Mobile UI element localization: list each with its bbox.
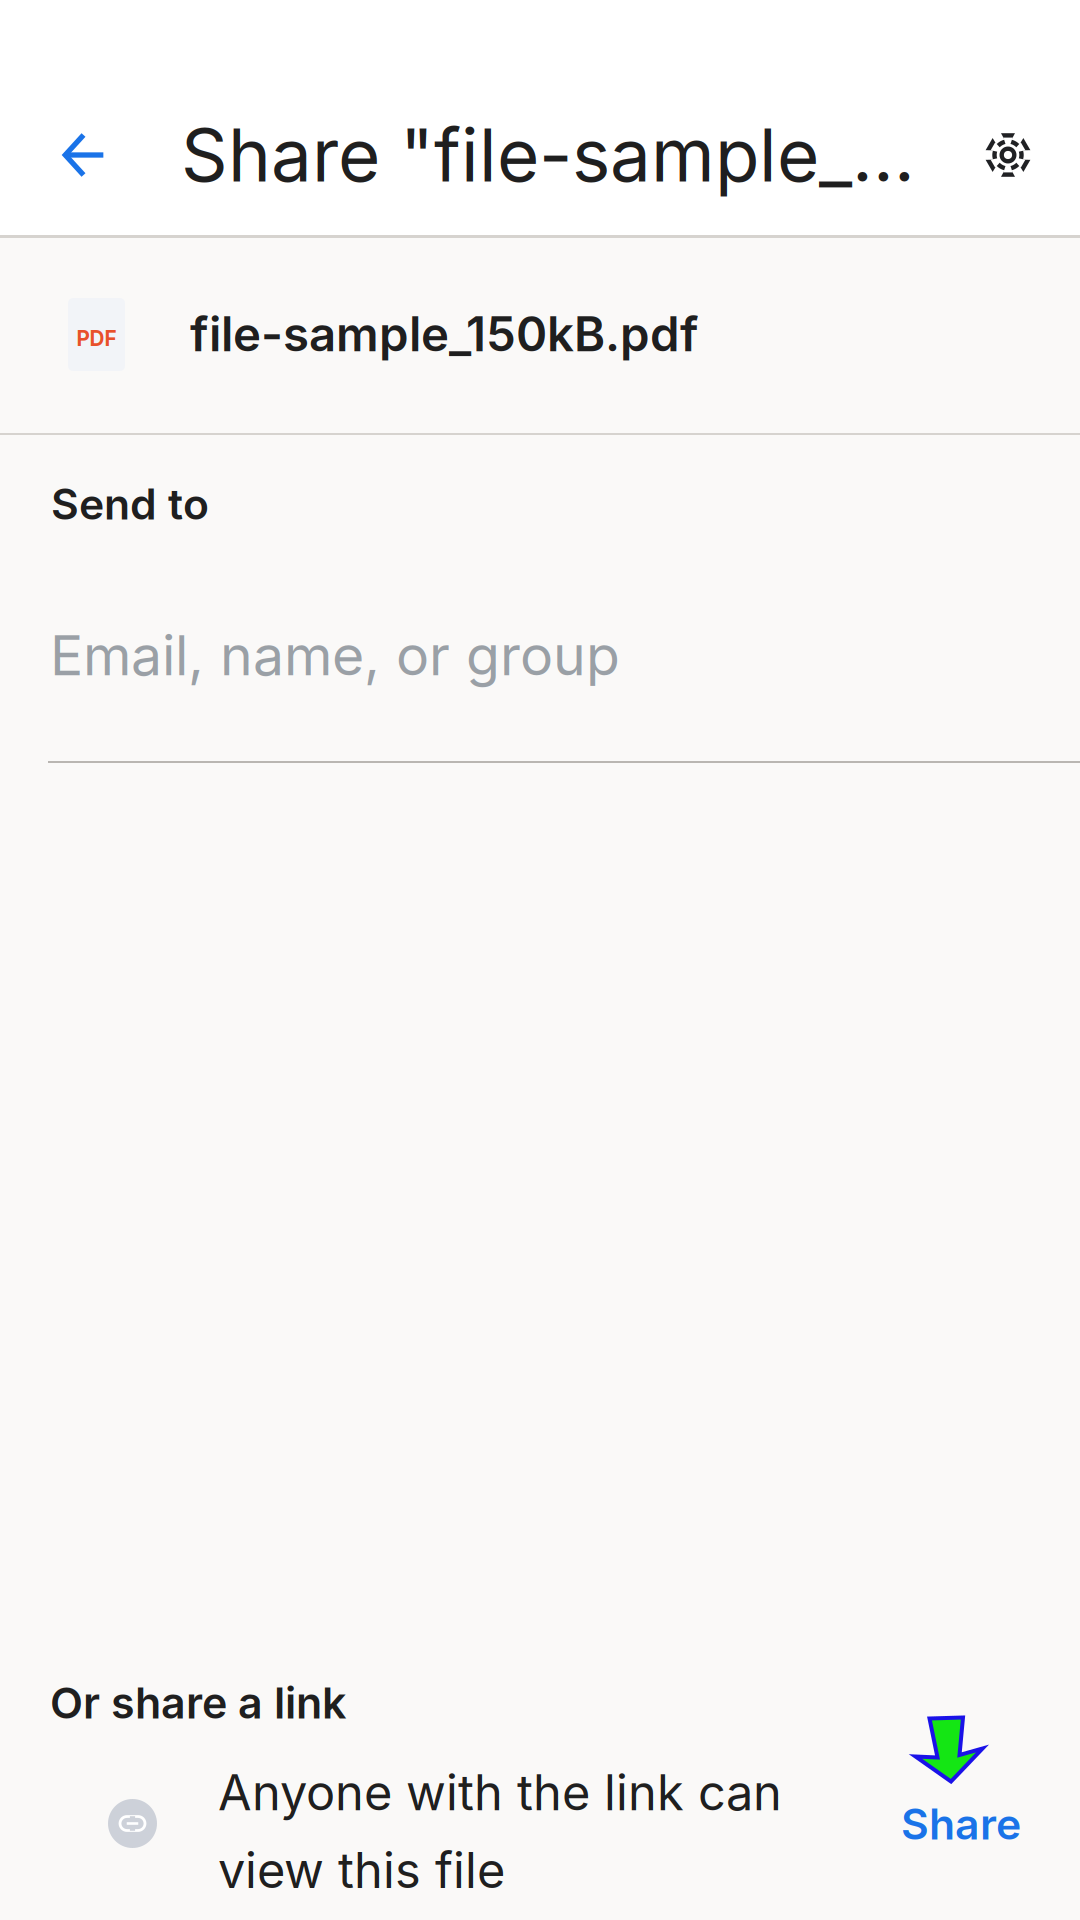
staticText: PDF xyxy=(76,326,116,351)
button[interactable]: Back xyxy=(21,95,147,215)
button[interactable]: Anyone with the link can xyxy=(0,1767,860,1917)
staticText: view this file xyxy=(218,1841,505,1900)
staticText: file-sample_150kB.pdf xyxy=(190,305,698,363)
staticText: Share "file-sample_… xyxy=(181,111,915,199)
button[interactable]: Settings xyxy=(952,95,1064,215)
staticText: Email, name, or group xyxy=(50,621,620,688)
staticText: Send to xyxy=(51,478,209,530)
staticText: Share xyxy=(901,1798,1021,1850)
staticText: Anyone with the link can xyxy=(218,1763,782,1822)
button[interactable]: Email, name, or group xyxy=(0,583,1080,763)
staticText: Or share a link xyxy=(50,1677,346,1729)
button[interactable]: Share xyxy=(873,1660,1063,1890)
